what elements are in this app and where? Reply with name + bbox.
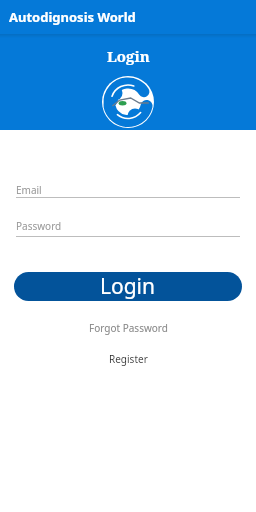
staticText: Register xyxy=(109,352,148,366)
staticText: Login xyxy=(100,272,156,301)
button[interactable]: Login xyxy=(14,272,242,301)
button[interactable]: Register xyxy=(109,352,148,366)
staticText: Autodignosis World xyxy=(9,8,136,26)
staticText: Password xyxy=(16,219,62,233)
button[interactable]: Forgot Password xyxy=(89,321,168,335)
staticText: Email xyxy=(16,183,42,197)
staticText: Login xyxy=(107,46,150,66)
button[interactable]: Email xyxy=(16,183,240,198)
button[interactable]: Password xyxy=(16,219,240,237)
staticText: Forgot Password xyxy=(89,321,168,335)
